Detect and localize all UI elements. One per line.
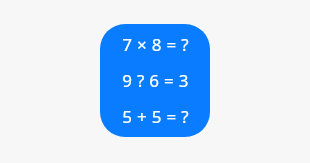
- staticText: 7 × 8 = ?: [122, 33, 189, 56]
- staticText: 5 + 5 = ?: [122, 105, 189, 128]
- button[interactable]: Math practice app icon: [100, 24, 210, 137]
- staticText: 9 ? 6 = 3: [122, 69, 189, 92]
